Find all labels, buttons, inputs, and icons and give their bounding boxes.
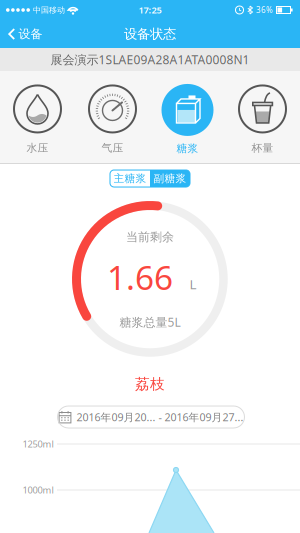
staticText: 糖浆 xyxy=(176,142,198,155)
staticText: 杯量 xyxy=(251,141,273,154)
staticText: 设备 xyxy=(18,27,42,41)
button[interactable]: 选择日期范围 xyxy=(57,406,244,428)
staticText: 水压 xyxy=(26,141,48,154)
button[interactable]: 糖浆 xyxy=(150,85,225,155)
staticText: 气压 xyxy=(101,141,123,154)
staticText: 1000ml xyxy=(22,484,53,496)
button[interactable]: 主糖浆 xyxy=(110,170,150,187)
staticText: 2016年09月20... - 2016年09月27... xyxy=(76,410,243,424)
button[interactable]: 水压 xyxy=(0,85,75,154)
staticText: 副糖浆 xyxy=(153,172,186,185)
button[interactable]: 气压 xyxy=(75,85,150,154)
staticText: 1.66 xyxy=(107,255,173,299)
staticText: 糖浆总量5L xyxy=(119,314,180,330)
staticText: 设备状态 xyxy=(124,26,176,42)
staticText: 中国移动 xyxy=(33,5,65,15)
staticText: 当前剩余 xyxy=(126,230,174,244)
staticText: 17:25 xyxy=(138,4,161,16)
button[interactable]: 副糖浆 xyxy=(150,170,190,187)
staticText: 36% xyxy=(256,5,273,15)
staticText: 荔枝 xyxy=(135,375,165,393)
staticText: 1250ml xyxy=(22,438,53,450)
staticText: 主糖浆 xyxy=(113,172,146,185)
button[interactable]: 杯量 xyxy=(225,85,300,154)
staticText: L xyxy=(189,275,196,293)
button[interactable]: 返回设备 xyxy=(0,27,42,41)
staticText: 展会演示1SLAE09A28A1ATA0008N1 xyxy=(50,51,249,67)
button[interactable]: 展会演示1SLAE09A28A1ATA0008N1 xyxy=(0,48,300,71)
